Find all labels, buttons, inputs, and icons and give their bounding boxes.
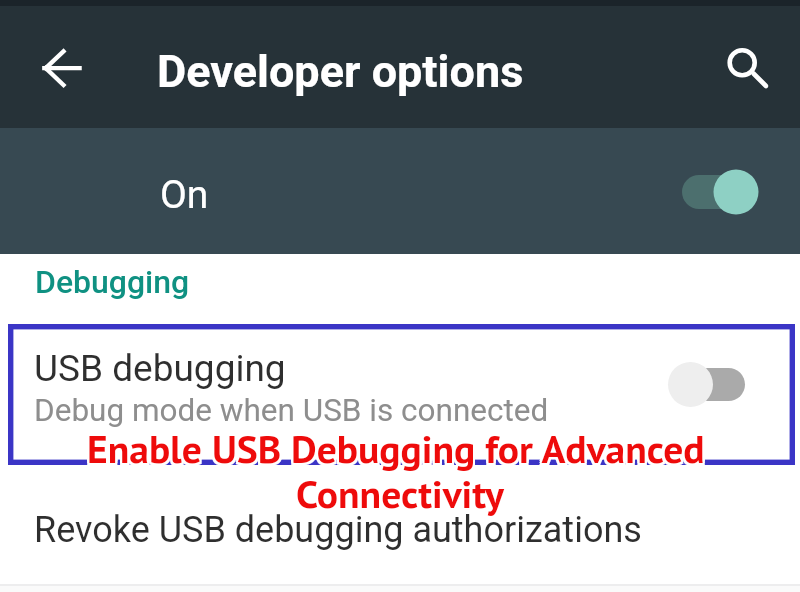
staticText: Enable USB Debugging for Advanced — [89, 423, 707, 474]
staticText: Connectivity — [298, 466, 507, 517]
staticText: Connectivity — [297, 467, 506, 518]
staticText: On — [160, 172, 209, 218]
staticText: Connectivity — [294, 466, 503, 517]
staticText: Connectivity — [294, 468, 503, 519]
staticText: USB debugging — [34, 347, 286, 390]
staticText: Enable USB Debugging for Advanced — [85, 425, 703, 476]
staticText: Enable USB Debugging for Advanced — [87, 423, 705, 474]
staticText: Enable USB Debugging for Advanced — [87, 425, 705, 476]
staticText: Enable USB Debugging for Advanced — [87, 424, 705, 475]
staticText: Debug mode when USB is connected — [34, 392, 549, 429]
staticText: Connectivity — [295, 467, 504, 518]
staticText: Enable USB Debugging for Advanced — [85, 423, 703, 474]
staticText: Connectivity — [298, 468, 507, 519]
staticText: Enable USB Debugging for Advanced — [89, 421, 707, 472]
staticText: Connectivity — [295, 468, 504, 519]
staticText: Enable USB Debugging for Advanced — [89, 425, 707, 476]
staticText: Enable USB Debugging for Advanced — [87, 422, 705, 473]
staticText: Debugging — [35, 263, 190, 301]
staticText: Enable USB Debugging for Advanced — [88, 422, 706, 473]
button[interactable]: On — [0, 128, 800, 254]
button[interactable]: Revoke USB debugging authorizations — [0, 470, 800, 584]
button[interactable]: Search — [710, 32, 774, 96]
staticText: Connectivity — [297, 469, 506, 520]
staticText: Connectivity — [296, 468, 505, 519]
staticText: Connectivity — [294, 470, 503, 521]
staticText: Revoke USB debugging authorizations — [34, 509, 642, 551]
staticText: Enable USB Debugging for Advanced — [88, 424, 706, 475]
staticText: Connectivity — [295, 469, 504, 520]
staticText: Connectivity — [298, 470, 507, 521]
button[interactable]: USB debugging — [8, 324, 795, 465]
button[interactable]: Back — [30, 38, 94, 102]
staticText: Enable USB Debugging for Advanced — [87, 421, 705, 472]
staticText: Connectivity — [296, 469, 505, 520]
staticText: Connectivity — [297, 468, 506, 519]
staticText: Enable USB Debugging for Advanced — [86, 423, 704, 474]
staticText: Enable USB Debugging for Advanced — [88, 423, 706, 474]
staticText: Enable USB Debugging for Advanced — [86, 424, 704, 475]
staticText: Enable USB Debugging for Advanced — [86, 422, 704, 473]
staticText: Connectivity — [296, 467, 505, 518]
staticText: Connectivity — [296, 470, 505, 521]
staticText: Connectivity — [296, 466, 505, 517]
staticText: Enable USB Debugging for Advanced — [85, 421, 703, 472]
staticText: Developer options — [157, 45, 524, 98]
